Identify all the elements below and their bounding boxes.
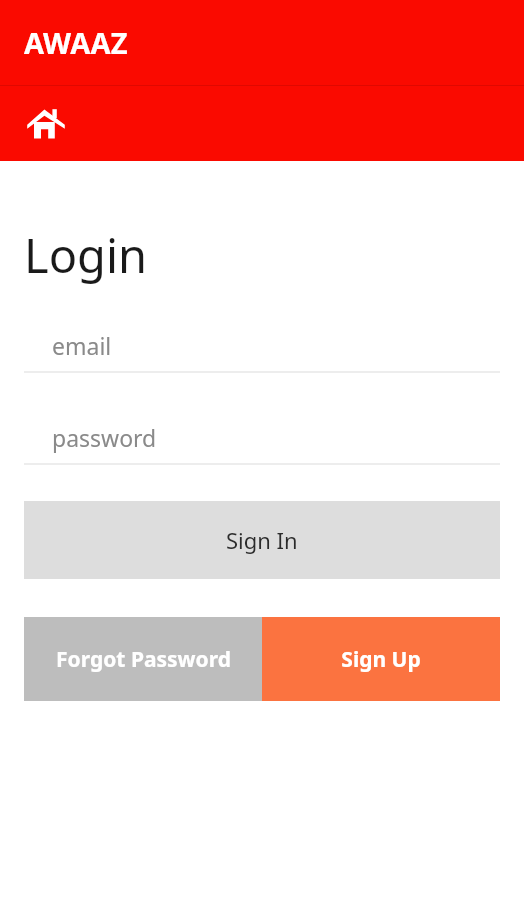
button[interactable]: password — [24, 411, 500, 465]
button[interactable]: Forgot Password — [24, 617, 262, 701]
staticText: Forgot Password — [56, 645, 231, 674]
staticText: password — [52, 422, 157, 453]
staticText: Sign Up — [341, 645, 421, 674]
button[interactable]: Home — [22, 100, 70, 148]
button[interactable]: Sign In — [24, 501, 500, 579]
staticText: AWAAZ — [24, 23, 128, 62]
button[interactable]: Sign Up — [262, 617, 500, 701]
staticText: Sign In — [226, 525, 298, 555]
staticText: Login — [24, 223, 148, 287]
button[interactable]: email — [24, 319, 500, 373]
staticText: email — [52, 330, 112, 361]
